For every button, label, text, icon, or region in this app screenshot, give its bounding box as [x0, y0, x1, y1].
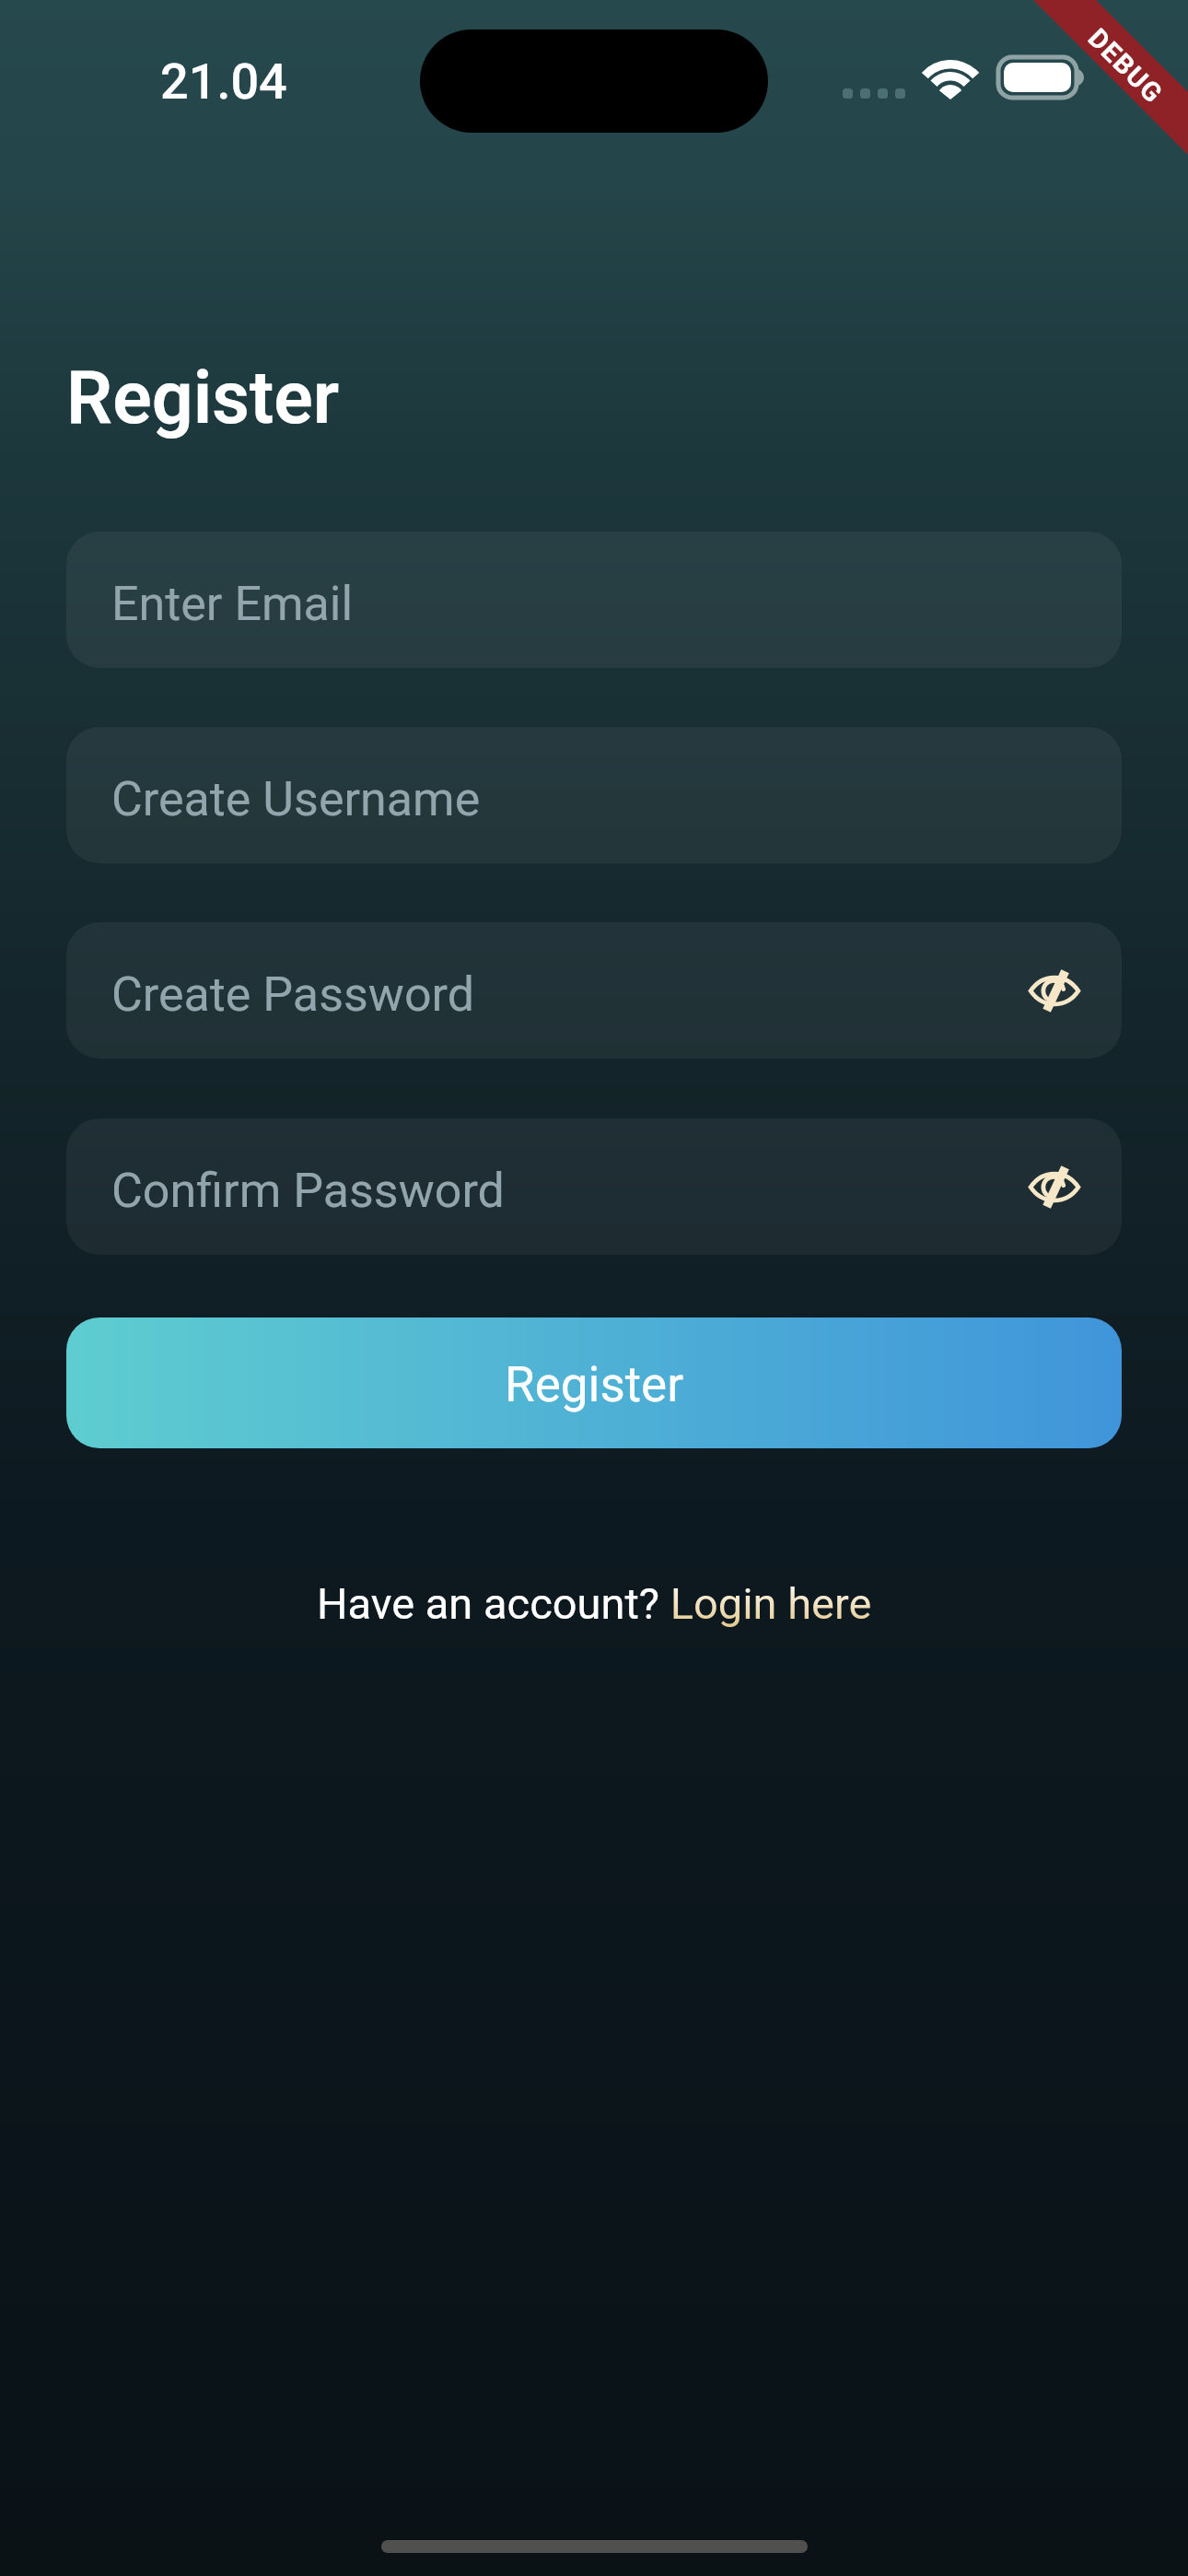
staticText: DEBUG — [1082, 22, 1170, 110]
staticText: Register — [66, 356, 340, 441]
staticText: Create Username — [111, 771, 481, 827]
button[interactable]: Toggle password visibility — [1020, 1153, 1089, 1221]
staticText: Create Password — [111, 966, 475, 1023]
button[interactable]: Have an account? Login here — [317, 1578, 872, 1629]
button[interactable]: Create Username — [66, 727, 1122, 863]
staticText: Enter Email — [111, 576, 354, 632]
button[interactable]: Enter Email — [66, 532, 1122, 668]
button[interactable]: Toggle password visibility — [1020, 956, 1089, 1025]
staticText: 21.04 — [160, 53, 287, 111]
staticText: Register — [505, 1356, 684, 1413]
button[interactable]: Confirm Password — [66, 1118, 1122, 1255]
staticText: Confirm Password — [111, 1163, 505, 1219]
button[interactable]: Create Password — [66, 922, 1122, 1059]
button[interactable]: Register — [66, 1317, 1122, 1448]
